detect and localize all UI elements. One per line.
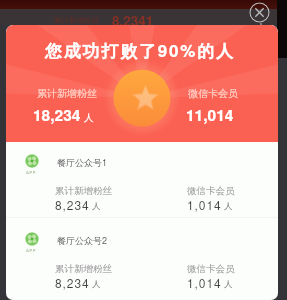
staticText: 人 <box>224 279 233 290</box>
staticText: 11,014 <box>186 104 234 126</box>
staticText: APP <box>26 169 37 175</box>
button[interactable]: APP <box>6 220 278 298</box>
staticText: 8,2341 <box>112 11 154 27</box>
staticText: 人 <box>84 112 94 124</box>
staticText: 1,014 <box>187 196 222 213</box>
staticText: 8,234 <box>55 196 90 213</box>
staticText: 累计新增粉丝 <box>55 185 112 197</box>
staticText: 餐厅公众号1 <box>57 156 108 169</box>
staticText: 累计新增粉丝 <box>54 16 99 25</box>
button[interactable]: Close <box>249 2 270 23</box>
staticText: 1,014 <box>187 274 222 291</box>
staticText: 8,234 <box>55 274 90 291</box>
staticText: 人 <box>224 201 233 212</box>
staticText: 累计新增粉丝 <box>55 263 112 275</box>
staticText: 人 <box>92 279 101 290</box>
button[interactable]: APP <box>6 142 278 220</box>
staticText: 微信卡会员 <box>187 263 235 275</box>
staticText: 餐厅公众号2 <box>57 234 108 247</box>
staticText: 累计新增粉丝 <box>37 87 97 100</box>
staticText: 18,234 <box>33 104 81 126</box>
staticText: 微信卡会员 <box>188 87 238 100</box>
staticText: 您成功打败了90%的人 <box>45 38 235 62</box>
staticText: APP <box>26 247 37 253</box>
staticText: 微信卡会员 <box>187 185 235 197</box>
staticText: 人 <box>92 201 101 212</box>
